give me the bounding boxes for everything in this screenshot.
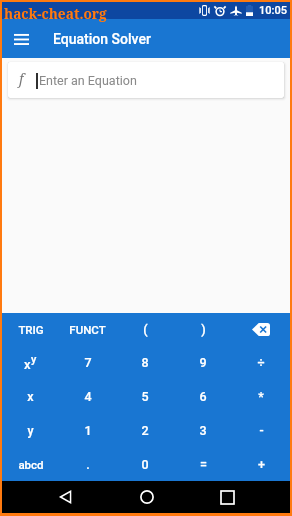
button[interactable]: ( bbox=[116, 313, 174, 346]
button[interactable]: Backspace bbox=[232, 313, 290, 346]
button[interactable]: ) bbox=[174, 313, 232, 346]
staticText: ) bbox=[201, 322, 206, 337]
button[interactable]: abcd bbox=[2, 447, 59, 481]
button[interactable]: 4 bbox=[59, 379, 116, 413]
button[interactable]: = bbox=[174, 447, 232, 481]
button[interactable]: 6 bbox=[174, 379, 232, 413]
button[interactable]: x bbox=[2, 346, 59, 379]
button[interactable]: 9 bbox=[174, 346, 232, 379]
staticText: ÷ bbox=[257, 355, 265, 370]
button[interactable]: - bbox=[232, 413, 290, 447]
button[interactable]: ÷ bbox=[232, 346, 290, 379]
staticText: Equation Solver bbox=[53, 31, 151, 47]
button[interactable]: Home bbox=[106, 481, 187, 513]
staticText: - bbox=[259, 423, 264, 438]
button[interactable]: Back bbox=[25, 481, 106, 513]
button[interactable]: 3 bbox=[174, 413, 232, 447]
button[interactable]: f bbox=[8, 62, 284, 98]
button[interactable]: . bbox=[59, 447, 116, 481]
staticText: 9 bbox=[199, 355, 207, 370]
button[interactable]: 5 bbox=[116, 379, 174, 413]
staticText: 2 bbox=[141, 423, 149, 438]
staticText: Enter an Equation bbox=[39, 73, 137, 88]
staticText: FUNCT bbox=[69, 323, 106, 336]
staticText: hack-cheat.org bbox=[4, 4, 107, 23]
button[interactable]: Open navigation menu bbox=[2, 20, 40, 58]
staticText: 10:05 bbox=[259, 4, 287, 17]
button[interactable]: 8 bbox=[116, 346, 174, 379]
button[interactable]: 0 bbox=[116, 447, 174, 481]
staticText: 7 bbox=[84, 355, 92, 370]
staticText: 0 bbox=[141, 457, 149, 472]
button[interactable]: 2 bbox=[116, 413, 174, 447]
button[interactable]: * bbox=[232, 379, 290, 413]
button[interactable]: FUNCT bbox=[59, 313, 116, 346]
staticText: 8 bbox=[141, 355, 149, 370]
button[interactable]: y bbox=[2, 413, 59, 447]
staticText: = bbox=[200, 457, 207, 472]
staticText: y bbox=[31, 353, 37, 366]
staticText: 5 bbox=[141, 389, 149, 404]
staticText: x bbox=[24, 357, 31, 372]
staticText: y bbox=[27, 423, 34, 438]
staticText: 6 bbox=[199, 389, 207, 404]
staticText: x bbox=[27, 389, 34, 404]
staticText: + bbox=[258, 457, 265, 472]
button[interactable]: x bbox=[2, 379, 59, 413]
staticText: ( bbox=[143, 322, 148, 337]
button[interactable]: + bbox=[232, 447, 290, 481]
staticText: f bbox=[19, 69, 24, 88]
staticText: 4 bbox=[84, 389, 92, 404]
staticText: * bbox=[258, 389, 264, 404]
staticText: abcd bbox=[18, 458, 44, 471]
button[interactable]: Recent apps bbox=[187, 481, 268, 513]
other: Backspace bbox=[232, 313, 290, 346]
button[interactable]: 7 bbox=[59, 346, 116, 379]
staticText: 1 bbox=[84, 423, 92, 438]
button[interactable]: 1 bbox=[59, 413, 116, 447]
button[interactable]: TRIG bbox=[2, 313, 59, 346]
staticText: . bbox=[86, 457, 90, 472]
staticText: TRIG bbox=[18, 323, 44, 336]
staticText: 3 bbox=[199, 423, 207, 438]
